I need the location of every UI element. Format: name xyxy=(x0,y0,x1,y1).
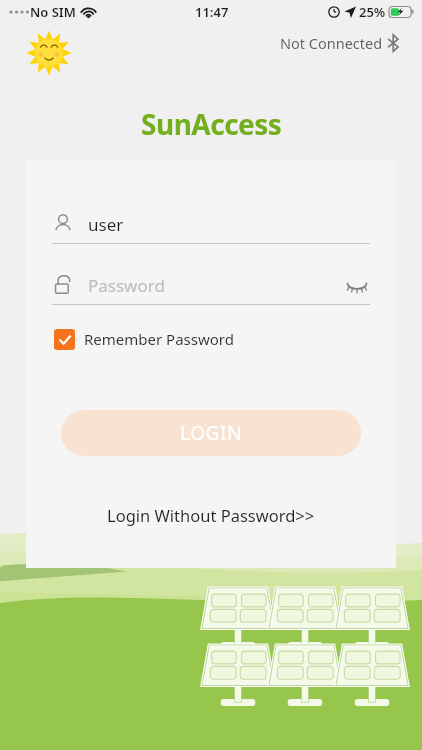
staticText: No SIM xyxy=(30,3,76,21)
staticText: LOGIN xyxy=(180,420,243,446)
button[interactable]: LOGIN xyxy=(61,410,361,456)
button[interactable]: Show password xyxy=(344,272,370,298)
button[interactable]: Password xyxy=(52,266,370,304)
staticText: Login Without Password>> xyxy=(107,504,315,526)
staticText: SunAccess xyxy=(141,105,282,143)
staticText: 11:47 xyxy=(195,3,229,21)
staticText: user xyxy=(88,213,124,236)
staticText: 25% xyxy=(359,3,386,21)
button[interactable]: Login Without Password>> xyxy=(97,500,325,530)
button[interactable]: Remember Password xyxy=(54,325,234,353)
staticText: Remember Password xyxy=(84,329,234,349)
staticText: Password xyxy=(88,274,165,297)
staticText: Not Connected xyxy=(280,33,383,53)
button[interactable]: user xyxy=(52,205,370,243)
other: Sun xyxy=(26,30,72,76)
